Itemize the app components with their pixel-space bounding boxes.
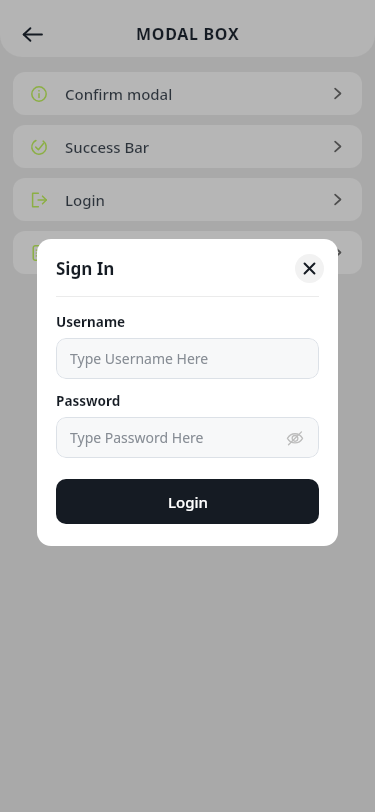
button[interactable]: Show password: [285, 428, 305, 448]
staticText: Type Password Here: [70, 428, 285, 447]
button[interactable]: Login: [13, 178, 362, 221]
staticText: Success Bar: [65, 137, 330, 157]
staticText: Password: [56, 392, 121, 410]
button[interactable]: Form: [13, 231, 362, 274]
button[interactable]: Success Bar: [13, 125, 362, 168]
staticText: MODAL BOX: [136, 23, 240, 45]
button[interactable]: Type Username Here: [56, 338, 319, 379]
staticText: Login: [168, 492, 208, 512]
staticText: Username: [56, 313, 126, 331]
staticText: Form: [65, 243, 330, 263]
button[interactable]: Back: [12, 14, 52, 54]
staticText: Sign In: [56, 257, 295, 280]
button[interactable]: Login: [56, 479, 319, 524]
button[interactable]: Close: [295, 254, 324, 283]
staticText: Login: [65, 190, 330, 210]
staticText: Type Username Here: [70, 349, 305, 368]
staticText: Confirm modal: [65, 84, 330, 104]
button[interactable]: Confirm modal: [13, 72, 362, 115]
button[interactable]: Type Password Here: [56, 417, 319, 458]
